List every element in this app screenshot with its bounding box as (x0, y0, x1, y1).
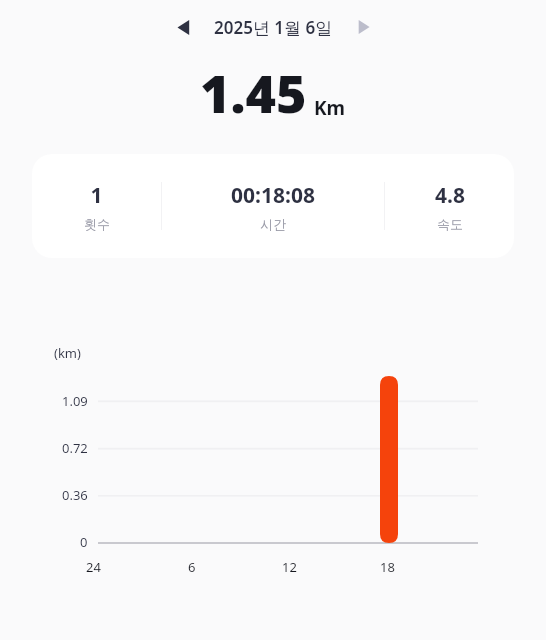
button[interactable]: Previous day (166, 10, 200, 44)
staticText: 횟수 (84, 216, 110, 232)
staticText: 0 (80, 533, 88, 551)
staticText: 24 (86, 558, 101, 576)
staticText: 12 (282, 558, 297, 576)
staticText: 2025년 1월 6일 (214, 16, 333, 39)
staticText: Km (314, 95, 346, 121)
staticText: 0.36 (62, 486, 88, 504)
staticText: 1.09 (62, 392, 88, 410)
staticText: (km) (54, 344, 81, 362)
staticText: 시간 (260, 216, 286, 232)
staticText: 4.8 (435, 181, 465, 210)
staticText: 18 (380, 558, 395, 576)
staticText: 속도 (437, 216, 463, 232)
staticText: 1 (90, 181, 103, 210)
button[interactable]: 1 (32, 154, 514, 258)
staticText: 6 (188, 558, 196, 576)
staticText: 1.45 (200, 57, 307, 128)
button[interactable]: Next day (347, 10, 381, 44)
staticText: 0.72 (62, 439, 88, 457)
staticText: 00:18:08 (231, 181, 315, 210)
